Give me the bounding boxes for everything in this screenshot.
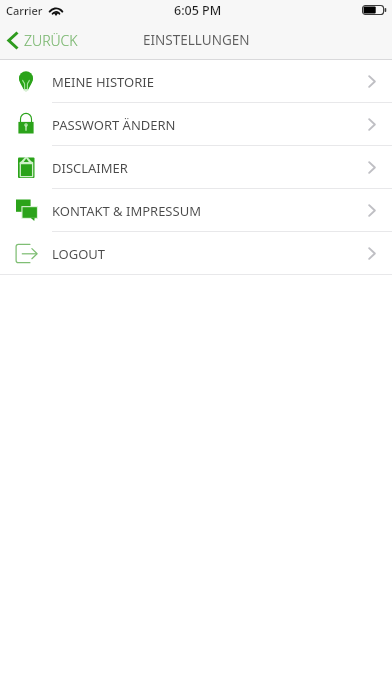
staticText: Carrier bbox=[6, 3, 43, 18]
staticText: PASSWORT ÄNDERN bbox=[52, 116, 176, 134]
staticText: 6:05 PM bbox=[174, 2, 222, 19]
button[interactable]: Contact bbox=[0, 189, 392, 232]
staticText: DISCLAIMER bbox=[52, 159, 128, 177]
staticText: ZURÜCK bbox=[24, 31, 78, 50]
button[interactable]: History bbox=[0, 60, 392, 103]
button[interactable]: Change password bbox=[0, 103, 392, 146]
staticText: LOGOUT bbox=[52, 245, 106, 263]
button[interactable]: Logout bbox=[0, 232, 392, 275]
button[interactable]: ZURÜCK bbox=[7, 31, 78, 50]
staticText: EINSTELLUNGEN bbox=[143, 31, 250, 49]
button[interactable]: Disclaimer bbox=[0, 146, 392, 189]
staticText: MEINE HISTORIE bbox=[52, 73, 154, 91]
staticText: KONTAKT & IMPRESSUM bbox=[52, 202, 201, 220]
